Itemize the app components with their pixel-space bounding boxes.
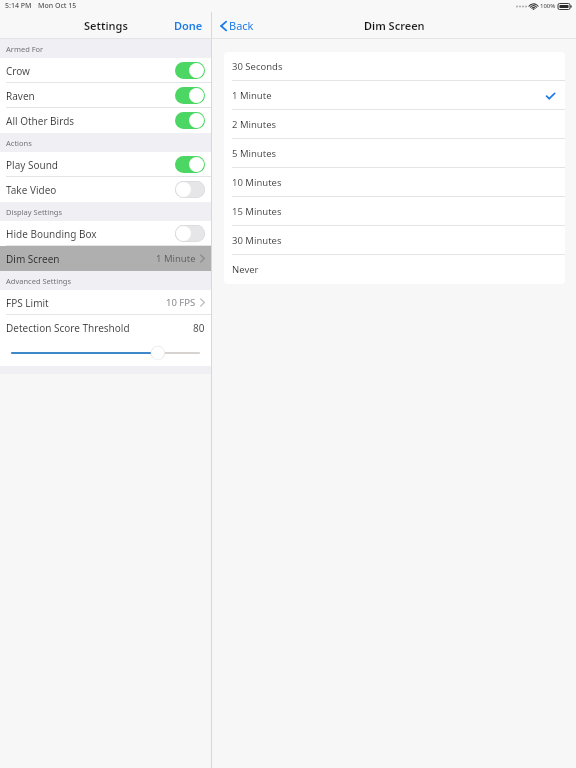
button[interactable]: Off bbox=[175, 225, 205, 242]
button[interactable] bbox=[12, 340, 199, 366]
staticText: Crow bbox=[6, 64, 30, 78]
staticText: 15 Minutes bbox=[232, 205, 282, 218]
button[interactable]: 30 Minutes bbox=[224, 226, 565, 255]
staticText: 5:14 PM bbox=[5, 1, 32, 11]
button[interactable]: Hide Bounding Box bbox=[0, 221, 211, 246]
staticText: FPS Limit bbox=[6, 296, 49, 310]
button[interactable]: FPS Limit bbox=[0, 290, 211, 315]
staticText: Play Sound bbox=[6, 158, 58, 172]
staticText: Armed For bbox=[6, 44, 44, 54]
staticText: 80 bbox=[193, 321, 205, 335]
button[interactable]: Done bbox=[174, 18, 203, 33]
button[interactable]: Back bbox=[220, 18, 254, 33]
staticText: Dim Screen bbox=[6, 252, 60, 266]
button[interactable]: On bbox=[175, 156, 205, 173]
staticText: Hide Bounding Box bbox=[6, 227, 97, 241]
button[interactable]: On bbox=[175, 112, 205, 129]
button[interactable]: 10 Minutes bbox=[224, 168, 565, 197]
button[interactable]: 2 Minutes bbox=[224, 110, 565, 139]
button[interactable]: On bbox=[175, 62, 205, 79]
button[interactable]: Play Sound bbox=[0, 152, 211, 177]
staticText: Take Video bbox=[6, 183, 57, 197]
button[interactable]: 30 Seconds bbox=[224, 52, 565, 81]
button[interactable]: Dim Screen bbox=[0, 246, 211, 271]
button[interactable]: Raven bbox=[0, 83, 211, 108]
button[interactable]: All Other Birds bbox=[0, 108, 211, 133]
staticText: 2 Minutes bbox=[232, 118, 277, 131]
staticText: Actions bbox=[6, 138, 32, 148]
button[interactable]: Take Video bbox=[0, 177, 211, 202]
staticText: 1 Minute bbox=[232, 89, 272, 102]
staticText: Detection Score Threshold bbox=[6, 321, 130, 335]
button[interactable]: 1 Minute bbox=[224, 81, 565, 110]
button[interactable]: 5 Minutes bbox=[224, 139, 565, 168]
staticText: 1 Minute bbox=[156, 252, 196, 265]
staticText: 100% bbox=[540, 2, 556, 10]
staticText: Advanced Settings bbox=[6, 276, 71, 286]
staticText: All Other Birds bbox=[6, 114, 75, 128]
staticText: Raven bbox=[6, 89, 35, 103]
button[interactable]: Crow bbox=[0, 58, 211, 83]
staticText: Never bbox=[232, 263, 259, 276]
staticText: 30 Seconds bbox=[232, 60, 283, 73]
staticText: 5 Minutes bbox=[232, 147, 277, 160]
button[interactable]: Off bbox=[175, 181, 205, 198]
staticText: 10 FPS bbox=[166, 296, 196, 309]
staticText: Done bbox=[174, 18, 203, 33]
button[interactable]: 15 Minutes bbox=[224, 197, 565, 226]
button[interactable]: Never bbox=[224, 255, 565, 284]
staticText: 10 Minutes bbox=[232, 176, 282, 189]
button[interactable]: On bbox=[175, 87, 205, 104]
staticText: 30 Minutes bbox=[232, 234, 282, 247]
staticText: Mon Oct 15 bbox=[38, 1, 77, 11]
staticText: Back bbox=[229, 18, 254, 33]
staticText: Settings bbox=[84, 18, 128, 33]
staticText: Dim Screen bbox=[364, 18, 425, 33]
staticText: Display Settings bbox=[6, 207, 63, 217]
